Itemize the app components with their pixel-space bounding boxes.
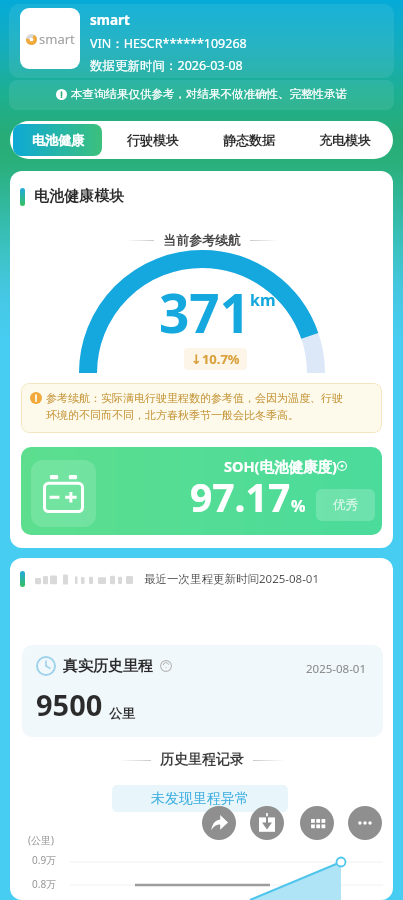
staticText: ↓10.7% — [191, 350, 240, 368]
button[interactable]: Share — [202, 806, 236, 840]
staticText: 未发现里程异常 — [151, 790, 249, 808]
staticText: smart — [39, 30, 75, 48]
staticText: 数据更新时间：2026-03-08 — [90, 57, 243, 74]
staticText: 0.8万 — [32, 877, 57, 891]
staticText: % — [291, 495, 306, 517]
staticText: 9500 — [36, 685, 103, 724]
staticText: VIN：HESCR******109268 — [90, 35, 247, 52]
staticText: SOH(电池健康度) — [224, 456, 337, 476]
staticText: 2025-08-01 — [306, 661, 367, 677]
staticText: km — [250, 289, 276, 311]
staticText: 充电模块 — [319, 132, 371, 148]
staticText: 行驶模块 — [127, 132, 179, 148]
staticText: 公里 — [109, 705, 135, 721]
staticText: 电池健康 — [32, 132, 84, 148]
staticText: (公里) — [28, 833, 54, 847]
staticText: 371 — [159, 276, 250, 348]
staticText: 真实历史里程 — [63, 657, 153, 676]
button[interactable]: Download — [250, 806, 284, 840]
button[interactable]: Apps — [300, 806, 334, 840]
staticText: smart — [90, 11, 130, 29]
staticText: 当前参考续航 — [163, 232, 241, 248]
staticText: 静态数据 — [223, 132, 275, 148]
staticText: 历史里程记录 — [160, 751, 244, 769]
staticText: 最近一次里程更新时间2025-08-01 — [144, 571, 320, 587]
staticText: 0.9万 — [32, 853, 57, 867]
staticText: 参考续航：实际满电行驶里程数的参考值，会因为温度、行驶 环境的不同而不同，北方春… — [46, 391, 343, 423]
button[interactable]: More — [348, 806, 382, 840]
staticText: 97.17 — [190, 470, 291, 523]
button[interactable]: 电池健康 — [13, 124, 102, 156]
staticText: 优秀 — [333, 497, 358, 513]
button[interactable]: 行驶模块 — [108, 124, 198, 156]
staticText: 本查询结果仅供参考，对结果不做准确性、完整性承诺 — [71, 87, 347, 101]
button[interactable]: 充电模块 — [300, 124, 390, 156]
staticText: 电池健康模块 — [34, 187, 124, 206]
button[interactable]: 静态数据 — [204, 124, 294, 156]
